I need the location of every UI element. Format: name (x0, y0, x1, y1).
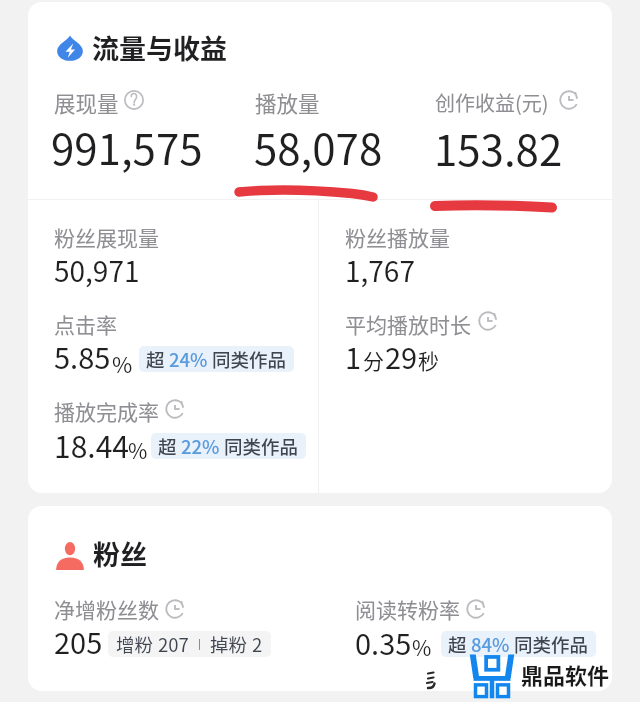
staticText: 205 (54, 620, 103, 662)
staticText: 1,767 (345, 250, 415, 291)
other: 历史数据 (163, 597, 187, 621)
staticText: 29 (385, 335, 418, 377)
staticText: 1 (345, 335, 362, 377)
staticText: ∣ (192, 633, 208, 655)
staticText: 58,078 (254, 116, 383, 177)
staticText: 增粉 (116, 631, 154, 657)
other: 历史数据 (163, 397, 187, 421)
other: 历史数据 (464, 597, 488, 621)
staticText: 粉丝展现量 (54, 222, 159, 252)
staticText: 5.85 (54, 335, 111, 377)
staticText: 粉丝播放量 (345, 222, 450, 252)
staticText: 阅读转粉率 (355, 594, 460, 624)
staticText: 流量与收益 (92, 28, 227, 67)
staticText: 50,971 (54, 250, 140, 291)
staticText: 净增粉丝数 (54, 594, 159, 624)
staticText: % (112, 347, 133, 379)
other: 历史数据 (476, 309, 500, 333)
staticText: 超 (158, 433, 177, 459)
staticText: 创作收益(元) (435, 88, 549, 117)
staticText: 粉丝 (93, 534, 147, 573)
staticText: 153.82 (434, 117, 563, 178)
staticText: 18.44 (54, 423, 129, 466)
staticText: 播放量 (255, 87, 320, 118)
staticText: 22% (181, 433, 220, 459)
staticText: 掉粉 (210, 631, 248, 657)
staticText: 2 (252, 631, 263, 657)
staticText: 同类作品 (212, 346, 287, 372)
button[interactable]: 超 (441, 631, 596, 657)
staticText: 991,575 (51, 116, 203, 177)
staticText: % (128, 435, 148, 465)
staticText: 分 (363, 345, 384, 375)
staticText: 平均播放时长 (345, 309, 471, 339)
button[interactable] (28, 2, 612, 493)
staticText: 0.35 (355, 621, 412, 663)
staticText: 同类作品 (514, 631, 589, 657)
button[interactable]: 超 (139, 346, 294, 372)
staticText: 鼎品软件 (521, 658, 610, 690)
staticText: 同类作品 (224, 433, 299, 459)
button[interactable]: 增粉 (108, 631, 271, 657)
staticText: 24% (169, 346, 208, 372)
staticText: 84% (471, 631, 510, 657)
staticText: 超 (146, 346, 165, 372)
button[interactable] (28, 506, 612, 691)
other: 指标说明 (122, 88, 146, 112)
other: 历史数据 (557, 88, 581, 112)
button[interactable]: 超 (151, 433, 306, 459)
staticText: 秒 (418, 345, 439, 375)
staticText: 播放完成率 (54, 396, 159, 426)
staticText: 超 (448, 631, 467, 657)
staticText: 展现量 (54, 87, 119, 118)
staticText: 207 (158, 631, 189, 657)
staticText: % (412, 632, 432, 662)
staticText: 点击率 (54, 309, 117, 339)
